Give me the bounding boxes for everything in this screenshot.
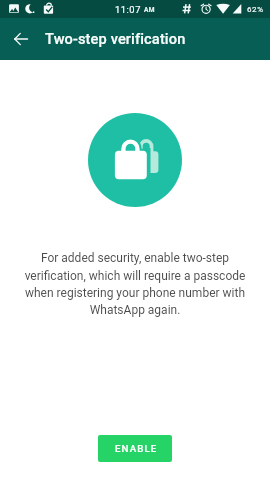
staticText: Two-step verification [45, 30, 186, 47]
staticText: 11:07 [115, 4, 141, 15]
button[interactable]: ENABLE [98, 435, 172, 462]
staticText: ENABLE [115, 443, 158, 454]
staticText: AM [144, 6, 155, 14]
button[interactable]: Back [0, 18, 42, 60]
staticText: 62% [247, 5, 264, 14]
staticText: For added security, enable two-step veri… [20, 251, 250, 317]
